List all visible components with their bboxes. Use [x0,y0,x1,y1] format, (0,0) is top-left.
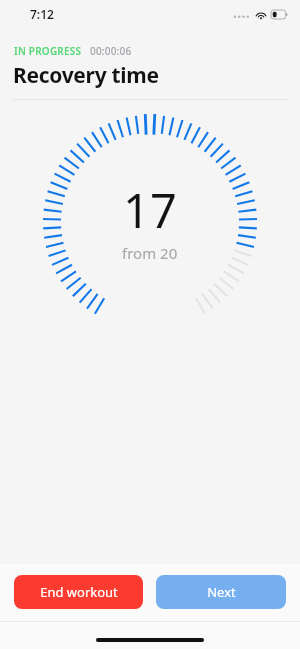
staticText: Next [207,583,236,601]
staticText: from 20 [122,243,178,263]
staticText: IN PROGRESS [14,44,82,58]
staticText: 17 [123,178,177,242]
staticText: Recovery time [13,61,159,90]
staticText: 00:00:06 [90,44,132,58]
staticText: End workout [40,583,118,601]
staticText: 7:12 [30,6,54,22]
button[interactable]: Next [156,575,286,609]
button[interactable]: End workout [14,575,143,609]
